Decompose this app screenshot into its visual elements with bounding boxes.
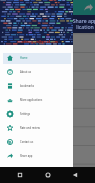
button[interactable]: bookmarks <box>0 79 73 93</box>
staticText: Settings <box>20 112 31 116</box>
button[interactable]: Recent apps <box>14 169 26 181</box>
button[interactable]: More applications <box>0 93 73 107</box>
button[interactable]: Contact us <box>0 135 73 149</box>
button[interactable]: Share application <box>84 3 93 12</box>
staticText: Contact us <box>20 140 34 144</box>
staticText: More applications <box>20 98 43 102</box>
button[interactable]: Share app <box>0 149 73 163</box>
staticText: About us <box>20 70 32 74</box>
button[interactable]: Home <box>0 51 73 65</box>
button[interactable]: Back <box>69 169 81 181</box>
staticText: Rate and review <box>20 126 40 130</box>
button[interactable]: Settings <box>0 107 73 121</box>
staticText: Share app lication <box>72 17 95 31</box>
button[interactable]: Home <box>42 169 54 181</box>
staticText: bookmarks <box>20 84 34 88</box>
staticText: Share app <box>20 154 33 158</box>
staticText: Home <box>20 56 28 60</box>
button[interactable]: About us <box>0 65 73 79</box>
button[interactable]: Share app lication <box>73 15 95 33</box>
staticText: newtimeguys@gmail.com <box>17 40 58 44</box>
button[interactable]: Rate and review <box>0 121 73 135</box>
